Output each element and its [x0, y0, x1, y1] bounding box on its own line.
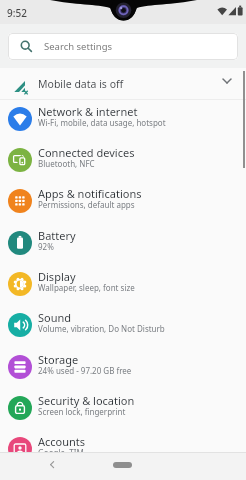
staticText: 24% used - 97.20 GB free [38, 365, 132, 376]
staticText: Network & internet [38, 104, 138, 119]
button[interactable] [44, 458, 60, 474]
button[interactable]: Security & location [0, 387, 246, 428]
button[interactable]: Sound [0, 304, 246, 345]
staticText: Accounts [38, 434, 86, 449]
button[interactable] [113, 462, 132, 468]
staticText: Permissions, default apps [38, 199, 135, 210]
staticText: Bluetooth, NFC [38, 158, 95, 169]
button[interactable]: Mobile data is off [0, 68, 246, 100]
button[interactable]: Battery [0, 222, 246, 263]
staticText: Google, TIM [38, 447, 84, 458]
staticText: Battery [38, 228, 76, 243]
button[interactable]: Accounts [0, 428, 246, 469]
button[interactable]: Network & internet [0, 98, 246, 139]
staticText: Connected devices [38, 145, 135, 160]
staticText: Screen lock, fingerprint [38, 406, 126, 417]
button[interactable]: Apps & notifications [0, 180, 246, 221]
staticText: 9:52 [7, 6, 27, 20]
staticText: Volume, vibration, Do Not Disturb [38, 323, 165, 334]
staticText: Sound [38, 310, 72, 325]
staticText: 92% [38, 241, 54, 252]
staticText: Apps & notifications [38, 186, 142, 201]
staticText: Display [38, 269, 76, 284]
staticText: Search settings [44, 40, 113, 53]
staticText: Wallpaper, sleep, font size [38, 282, 135, 293]
button[interactable]: Connected devices [0, 139, 246, 180]
staticText: Mobile data is off [38, 77, 124, 91]
staticText: Wi-Fi, mobile, data usage, hotspot [38, 117, 166, 128]
button[interactable]: Display [0, 263, 246, 304]
button[interactable]: Search settings [8, 33, 238, 60]
button[interactable]: Storage [0, 346, 246, 387]
staticText: Security & location [38, 393, 135, 408]
staticText: Storage [38, 352, 79, 367]
